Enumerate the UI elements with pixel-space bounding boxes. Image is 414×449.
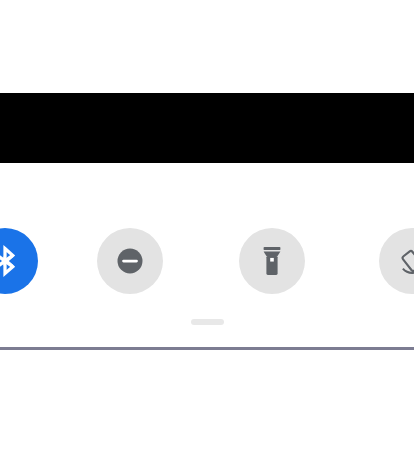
- button[interactable]: Bluetooth: [0, 228, 38, 294]
- button[interactable]: [191, 319, 224, 325]
- button[interactable]: Auto rotate: [379, 228, 414, 294]
- button[interactable]: Flashlight: [239, 228, 305, 294]
- button[interactable]: Do Not Disturb: [97, 228, 163, 294]
